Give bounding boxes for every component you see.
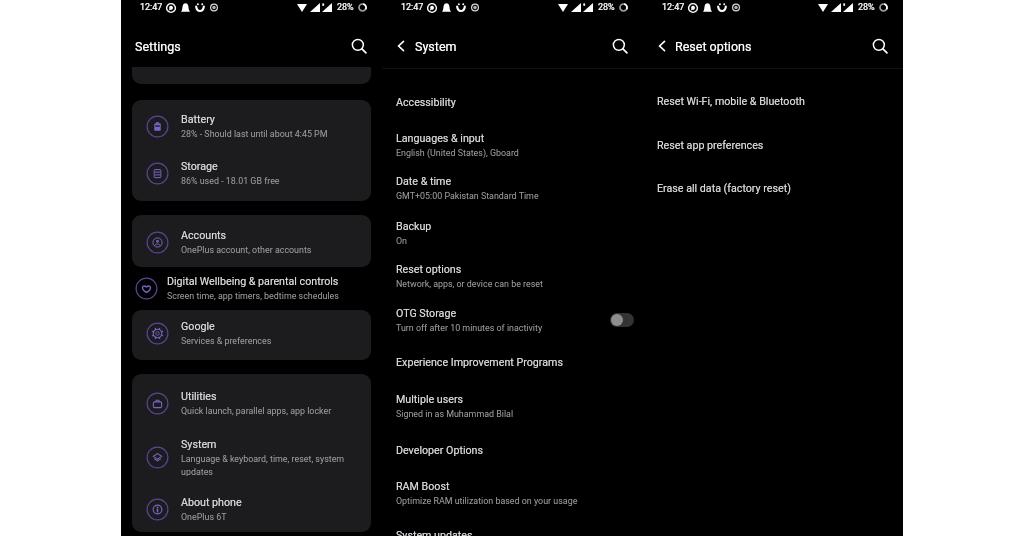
button[interactable]: Back [651, 35, 673, 57]
button[interactable]: Search [607, 33, 633, 59]
staticText: GMT+05:00 Pakistan Standard Time [396, 191, 539, 201]
staticText: Reset options [396, 263, 462, 276]
staticText: 12:47 [401, 2, 424, 13]
button[interactable]: System updates [382, 513, 643, 536]
staticText: Signed in as Muhammad Bilal [396, 409, 514, 419]
staticText: Storage [181, 160, 218, 173]
staticText: OnePlus account, other accounts [181, 245, 312, 255]
button[interactable]: Backup [382, 211, 643, 255]
staticText: 28% [337, 2, 354, 13]
staticText: Reset options [675, 39, 752, 54]
staticText: System [181, 438, 217, 451]
staticText: Network, apps, or device can be reset [396, 279, 543, 289]
button[interactable]: Search [867, 33, 893, 59]
button[interactable]: Multiple users [382, 384, 643, 428]
button[interactable]: OTG Storage [382, 298, 643, 342]
button[interactable]: System [132, 438, 371, 476]
button[interactable]: Erase all data (factory reset) [643, 166, 903, 210]
staticText: Backup [396, 220, 432, 233]
button[interactable]: OTG Storage toggle [610, 313, 634, 327]
staticText: Google [181, 320, 215, 333]
staticText: Accessibility [396, 96, 456, 109]
button[interactable]: Date & time [382, 166, 643, 210]
button[interactable]: RAM Boost [382, 471, 643, 515]
button[interactable]: Digital Wellbeing & parental controls [121, 275, 382, 301]
staticText: OTG Storage [396, 307, 457, 320]
button[interactable]: Reset options [382, 254, 643, 298]
button[interactable]: Reset app preferences [643, 123, 903, 167]
button[interactable]: Search [346, 33, 372, 59]
staticText: Reset Wi-Fi, mobile & Bluetooth [657, 95, 805, 108]
staticText: Quick launch, parallel apps, app locker [181, 406, 332, 416]
staticText: Language & keyboard, time, reset, system… [181, 454, 350, 476]
button[interactable]: Google [132, 320, 371, 346]
staticText: Utilities [181, 390, 217, 403]
staticText: On [396, 236, 408, 246]
staticText: RAM Boost [396, 480, 450, 493]
button[interactable]: Reset Wi-Fi, mobile & Bluetooth [643, 79, 903, 123]
staticText: Accounts [181, 229, 227, 242]
button[interactable]: Accessibility [382, 80, 643, 124]
staticText: System [415, 39, 457, 54]
staticText: Developer Options [396, 444, 483, 457]
button[interactable]: Accounts [132, 229, 371, 255]
button[interactable]: Developer Options [382, 428, 643, 472]
staticText: Experience Improvement Programs [396, 356, 563, 369]
staticText: 28% [858, 2, 875, 13]
staticText: Settings [135, 39, 181, 54]
staticText: Multiple users [396, 393, 464, 406]
staticText: Optimize RAM utilization based on your u… [396, 496, 578, 506]
button[interactable]: Battery [132, 113, 371, 139]
staticText: Digital Wellbeing & parental controls [167, 275, 339, 288]
button[interactable]: Experience Improvement Programs [382, 340, 643, 384]
staticText: 12:47 [140, 2, 163, 13]
staticText: 86% used - 18.01 GB free [181, 176, 280, 186]
staticText: Erase all data (factory reset) [657, 182, 791, 195]
staticText: About phone [181, 496, 242, 509]
button[interactable]: About phone [132, 496, 371, 522]
button[interactable]: Languages & input [382, 123, 643, 167]
staticText: 12:47 [662, 2, 685, 13]
staticText: English (United States), Gboard [396, 148, 519, 158]
staticText: Date & time [396, 175, 452, 188]
staticText: OnePlus 6T [181, 512, 227, 522]
staticText: Battery [181, 113, 215, 126]
staticText: 28% - Should last until about 4:45 PM [181, 129, 328, 139]
button[interactable]: Storage [132, 160, 371, 186]
staticText: Turn off after 10 minutes of inactivity [396, 323, 543, 333]
staticText: 28% [598, 2, 615, 13]
button[interactable]: Utilities [132, 390, 371, 416]
staticText: Screen time, app timers, bedtime schedul… [167, 291, 339, 301]
staticText: Services & preferences [181, 336, 272, 346]
button[interactable]: Back [390, 35, 412, 57]
staticText: Languages & input [396, 132, 485, 145]
staticText: System updates [396, 529, 473, 536]
staticText: Reset app preferences [657, 139, 764, 152]
